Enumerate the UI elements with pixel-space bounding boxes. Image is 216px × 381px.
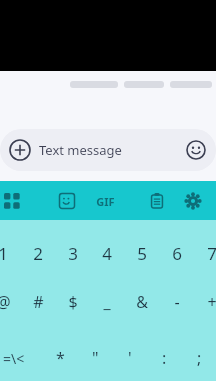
button[interactable]: + bbox=[197, 277, 216, 327]
staticText: ; bbox=[197, 347, 202, 369]
button[interactable]: @ bbox=[0, 277, 18, 327]
button[interactable]: Add attachment bbox=[5, 135, 35, 165]
button[interactable]: - bbox=[162, 277, 192, 327]
staticText: _ bbox=[103, 291, 111, 313]
button[interactable]: 6 bbox=[162, 230, 192, 277]
staticText: Text message bbox=[39, 141, 180, 159]
button[interactable]: Emoji bbox=[180, 134, 212, 166]
button[interactable]: 4 bbox=[92, 230, 122, 277]
button[interactable]: 3 bbox=[58, 230, 88, 277]
staticText: GIF bbox=[96, 194, 115, 209]
button[interactable]: Clipboard bbox=[142, 186, 172, 216]
button[interactable]: 5 bbox=[127, 230, 157, 277]
staticText: =\< bbox=[3, 349, 25, 368]
button[interactable]: 1 bbox=[0, 230, 18, 277]
staticText: # bbox=[33, 291, 44, 313]
button[interactable]: " bbox=[80, 341, 110, 375]
button[interactable]: $ bbox=[58, 277, 88, 327]
staticText: 2 bbox=[33, 242, 43, 265]
button[interactable]: 7 bbox=[197, 230, 216, 277]
staticText: 7 bbox=[207, 242, 216, 265]
staticText: ' bbox=[128, 347, 132, 369]
button[interactable]: ' bbox=[115, 341, 145, 375]
button[interactable]: 2 bbox=[23, 230, 53, 277]
staticText: : bbox=[162, 347, 167, 369]
staticText: * bbox=[56, 347, 65, 369]
staticText: " bbox=[92, 347, 99, 369]
button[interactable]: Apps bbox=[0, 185, 28, 217]
button[interactable]: Settings bbox=[178, 186, 208, 216]
staticText: @ bbox=[0, 291, 11, 313]
button[interactable]: ; bbox=[184, 341, 214, 375]
staticText: 6 bbox=[172, 242, 182, 265]
button[interactable]: : bbox=[149, 341, 179, 375]
button[interactable]: # bbox=[23, 277, 53, 327]
button[interactable]: GIF bbox=[88, 186, 122, 216]
staticText: + bbox=[207, 291, 216, 313]
button[interactable]: & bbox=[127, 277, 157, 327]
staticText: 3 bbox=[68, 242, 78, 265]
button[interactable]: Add attachment bbox=[0, 129, 216, 171]
button[interactable]: =\< bbox=[0, 341, 34, 375]
button[interactable]: _ bbox=[92, 277, 122, 327]
button[interactable]: Stickers bbox=[52, 186, 82, 216]
staticText: 1 bbox=[0, 242, 8, 265]
staticText: 4 bbox=[102, 242, 112, 265]
staticText: & bbox=[136, 291, 148, 313]
button[interactable]: * bbox=[45, 341, 75, 375]
staticText: $ bbox=[68, 291, 78, 313]
staticText: - bbox=[174, 291, 180, 313]
staticText: 5 bbox=[137, 242, 147, 265]
